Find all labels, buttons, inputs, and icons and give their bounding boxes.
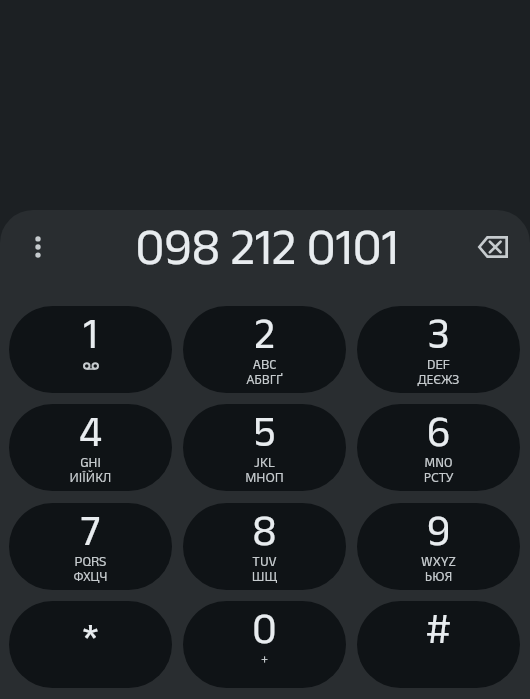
staticText: 9: [357, 506, 520, 553]
staticText: 6: [357, 407, 520, 454]
button[interactable]: 2: [183, 306, 346, 393]
staticText: ЬЮЯ: [357, 568, 520, 585]
staticText: 5: [183, 407, 346, 454]
staticText: 2: [183, 309, 346, 356]
staticText: WXYZ: [357, 553, 520, 569]
button[interactable]: Backspace: [469, 223, 517, 271]
staticText: АБВГҐ: [183, 371, 346, 388]
staticText: MNO: [357, 454, 520, 470]
button[interactable]: *: [9, 601, 172, 688]
button[interactable]: #: [357, 601, 520, 688]
staticText: 8: [183, 506, 346, 553]
staticText: ФХЦЧ: [9, 568, 172, 585]
button[interactable]: 6: [357, 404, 520, 491]
button[interactable]: 4: [9, 404, 172, 491]
staticText: *: [9, 614, 172, 661]
staticText: ШЩ: [183, 568, 346, 585]
staticText: JKL: [183, 454, 346, 470]
staticText: ДЕЄЖЗ: [357, 371, 520, 388]
staticText: #: [357, 604, 520, 651]
staticText: ABC: [183, 356, 346, 372]
button[interactable]: 8: [183, 503, 346, 590]
staticText: GHI: [9, 454, 172, 470]
staticText: ИІЇЙКЛ: [9, 469, 172, 486]
button[interactable]: 0: [183, 601, 346, 688]
staticText: PQRS: [9, 553, 172, 569]
staticText: 7: [9, 506, 172, 553]
button[interactable]: More options: [14, 223, 62, 271]
button[interactable]: 1: [9, 306, 172, 393]
staticText: 3: [357, 309, 520, 356]
button[interactable]: 5: [183, 404, 346, 491]
staticText: 098 212 0101: [2, 218, 530, 274]
staticText: DEF: [357, 356, 520, 372]
staticText: РСТУ: [357, 469, 520, 486]
button[interactable]: 3: [357, 306, 520, 393]
staticText: МНОП: [183, 469, 346, 486]
staticText: +: [183, 651, 346, 667]
staticText: TUV: [183, 553, 346, 569]
button[interactable]: 7: [9, 503, 172, 590]
staticText: 4: [9, 407, 172, 454]
staticText: 0: [183, 604, 346, 651]
staticText: 1: [9, 309, 172, 356]
button[interactable]: 9: [357, 503, 520, 590]
